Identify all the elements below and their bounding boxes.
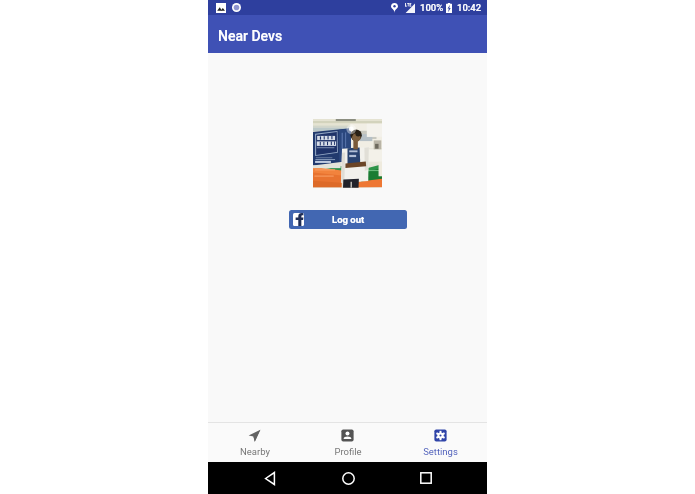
staticText: 100% bbox=[420, 2, 444, 13]
button[interactable]: Home bbox=[335, 465, 361, 491]
button[interactable]: Back bbox=[257, 465, 283, 491]
staticText: Near Devs bbox=[218, 28, 283, 44]
staticText: Settings bbox=[423, 446, 458, 457]
button[interactable]: Log out bbox=[289, 210, 407, 229]
button[interactable]: Recents bbox=[413, 465, 439, 491]
staticText: Profile bbox=[334, 446, 362, 457]
button[interactable]: Profile bbox=[301, 423, 394, 462]
button[interactable]: Nearby bbox=[208, 423, 301, 462]
staticText: Log out bbox=[332, 214, 365, 225]
staticText: 10:42 bbox=[457, 2, 482, 13]
button[interactable]: Settings bbox=[394, 423, 487, 462]
staticText: Nearby bbox=[240, 446, 270, 457]
